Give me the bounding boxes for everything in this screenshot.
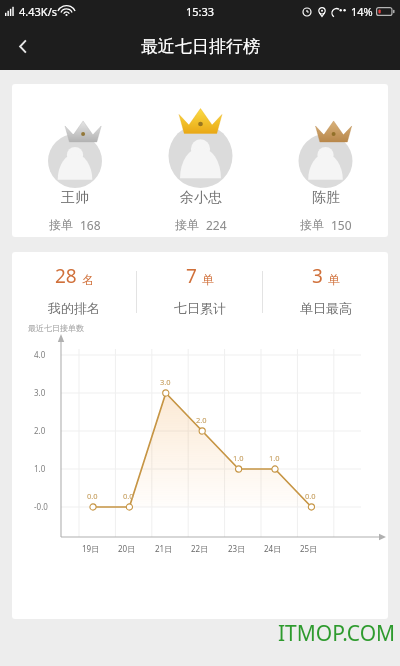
staticText: 0.0 xyxy=(305,491,316,501)
button[interactable]: 陈胜 xyxy=(263,84,388,237)
button[interactable]: 余小忠 xyxy=(138,84,263,237)
staticText: 20日 xyxy=(118,543,136,554)
staticText: 2.0 xyxy=(34,425,46,436)
staticText: 1.0 xyxy=(233,453,244,463)
staticText: 王帅 xyxy=(61,189,89,207)
staticText: 25日 xyxy=(300,543,318,554)
staticText: ITMOP.COM xyxy=(278,619,396,648)
staticText: 单日最高 xyxy=(300,300,352,316)
staticText: 最近七日接单数 xyxy=(28,323,84,333)
staticText: 我的排名 xyxy=(48,300,100,316)
staticText: 24日 xyxy=(264,543,282,554)
staticText: 2.0 xyxy=(196,415,207,425)
staticText: 余小忠 xyxy=(180,189,222,207)
staticText: 3.0 xyxy=(160,377,171,387)
button[interactable]: 王帅 xyxy=(12,84,138,237)
staticText: 19日 xyxy=(82,543,100,554)
staticText: 168 xyxy=(80,217,101,233)
staticText: 1.0 xyxy=(34,463,46,474)
staticText: 4.43K/s xyxy=(19,4,57,19)
staticText: 15:33 xyxy=(186,4,215,19)
staticText: 3.0 xyxy=(34,387,46,398)
staticText: 3 xyxy=(312,263,323,289)
staticText: 七日累计 xyxy=(174,300,226,316)
staticText: 28 xyxy=(55,263,77,289)
staticText: 150 xyxy=(331,217,352,233)
button[interactable]: 7 xyxy=(137,263,262,321)
staticText: 22日 xyxy=(191,543,209,554)
staticText: 接单 xyxy=(49,217,73,232)
staticText: 接单 xyxy=(175,217,199,232)
button[interactable]: 28 xyxy=(12,263,136,321)
button[interactable]: Back xyxy=(0,22,46,70)
staticText: -0.0 xyxy=(34,501,48,512)
staticText: 0.0 xyxy=(87,491,98,501)
staticText: 21日 xyxy=(155,543,173,554)
staticText: 陈胜 xyxy=(312,189,340,207)
staticText: 4.0 xyxy=(34,349,46,360)
staticText: 224 xyxy=(206,217,227,233)
staticText: 23日 xyxy=(228,543,246,554)
staticText: 最近七日排行榜 xyxy=(141,36,260,57)
staticText: 接单 xyxy=(300,217,324,232)
staticText: 1.0 xyxy=(269,453,280,463)
staticText: 7 xyxy=(186,263,197,289)
staticText: 单 xyxy=(328,272,340,287)
staticText: 单 xyxy=(202,272,214,287)
staticText: 名 xyxy=(82,272,94,287)
button[interactable]: 3 xyxy=(263,263,388,321)
staticText: 0.0 xyxy=(123,491,134,501)
staticText: 14% xyxy=(351,4,373,19)
